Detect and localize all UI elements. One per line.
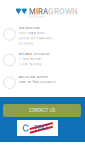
staticText: 2525 LOMITA BLVD. (19, 32, 46, 35)
staticText: CONTACT US (28, 108, 55, 113)
staticText: OUR LOCATION (19, 26, 40, 30)
staticText: C (22, 122, 29, 134)
staticText: GROWN (48, 7, 78, 16)
staticText: CA 90505 (19, 42, 34, 45)
button[interactable]: CONTACT US (3, 104, 81, 117)
staticText: P: (310) 787 8787 (19, 58, 42, 61)
staticText: F: (310) 787 8738 (19, 63, 42, 66)
staticText: SUITE# 103 TORRANCE, (19, 37, 54, 40)
staticText: TPAT (34, 124, 49, 132)
staticText: MIRA (29, 7, 48, 16)
staticText: MAIL US FOR QUOTES (19, 75, 49, 79)
staticText: JIMMY.WEI@MIRAGROWN.US (19, 81, 57, 84)
staticText: FEEL FREE TO CALL US (19, 52, 50, 56)
staticText: GROWING TOGETHER (29, 16, 46, 18)
